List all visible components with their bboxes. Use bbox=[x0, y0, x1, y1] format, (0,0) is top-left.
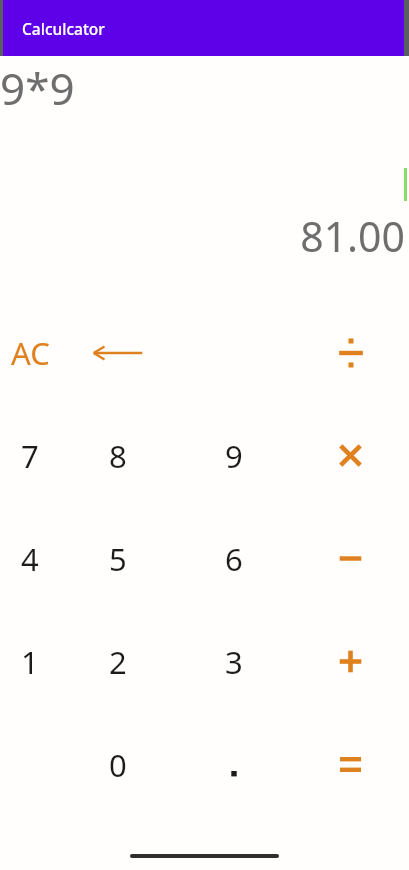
button[interactable]: Backspace bbox=[60, 301, 175, 404]
staticText: 6 bbox=[225, 538, 243, 580]
staticText: 3 bbox=[225, 641, 243, 683]
button[interactable]: Decimal point bbox=[175, 713, 292, 816]
staticText: 7 bbox=[21, 435, 39, 477]
staticText: 0 bbox=[109, 744, 127, 786]
button[interactable]: 2 bbox=[60, 610, 175, 713]
button[interactable]: Equals bbox=[292, 713, 409, 816]
staticText: 4 bbox=[21, 538, 39, 580]
staticText: 2 bbox=[109, 641, 127, 683]
button[interactable]: 1 bbox=[0, 610, 60, 713]
staticText: 9 bbox=[225, 435, 243, 477]
button[interactable]: 9 bbox=[175, 404, 292, 507]
button[interactable]: AC bbox=[0, 301, 60, 404]
staticText: 9*9 bbox=[0, 58, 75, 118]
staticText: 5 bbox=[109, 538, 127, 580]
staticText: Calculcator bbox=[22, 18, 105, 39]
staticText: 81.00 bbox=[300, 208, 405, 264]
staticText: 1 bbox=[21, 641, 39, 683]
button[interactable]: 6 bbox=[175, 507, 292, 610]
button[interactable]: Add bbox=[292, 610, 409, 713]
button[interactable]: 5 bbox=[60, 507, 175, 610]
staticText: AC bbox=[11, 332, 50, 374]
button[interactable]: Multiply bbox=[292, 404, 409, 507]
button[interactable]: 0 bbox=[60, 713, 175, 816]
button[interactable]: 4 bbox=[0, 507, 60, 610]
button[interactable]: Divide bbox=[292, 301, 409, 404]
staticText: 8 bbox=[109, 435, 127, 477]
button[interactable]: Subtract bbox=[292, 507, 409, 610]
button[interactable]: 3 bbox=[175, 610, 292, 713]
button[interactable]: 8 bbox=[60, 404, 175, 507]
button[interactable]: 7 bbox=[0, 404, 60, 507]
